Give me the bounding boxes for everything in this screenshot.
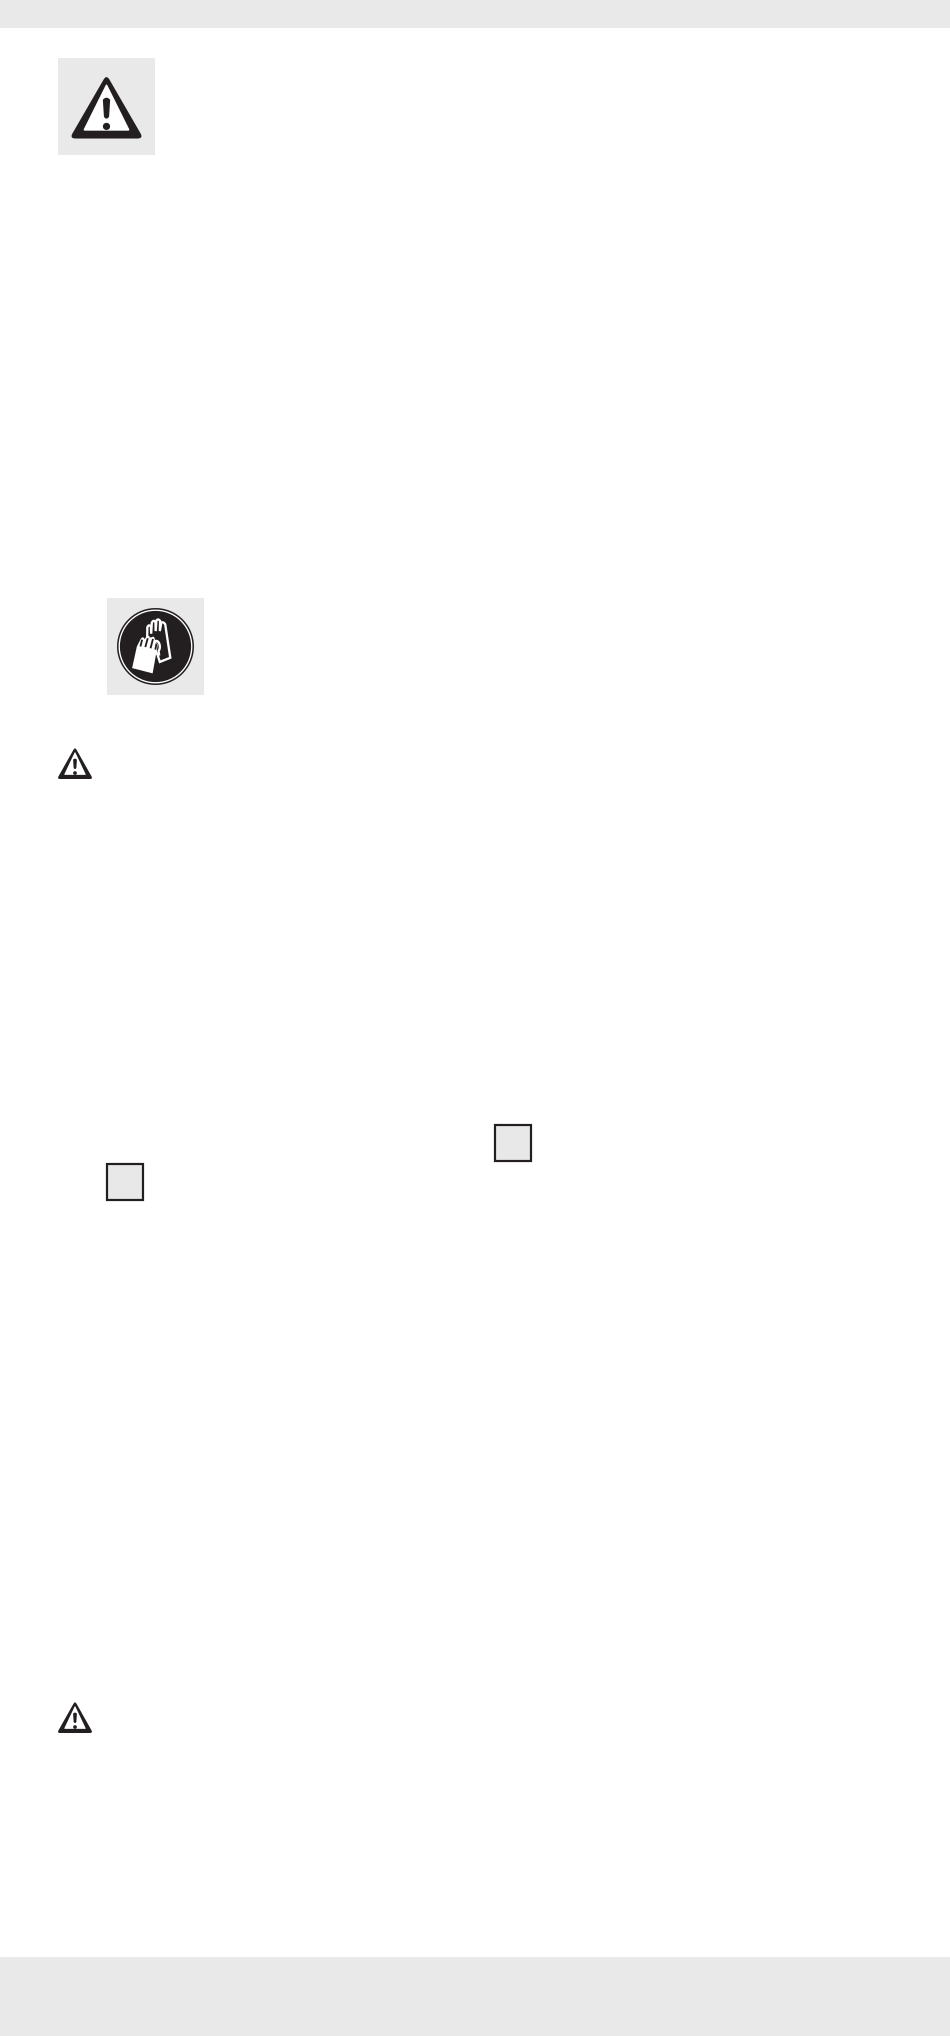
- button[interactable]: Warning — read the safety instructions: [58, 58, 155, 155]
- button[interactable]: Wear protective gloves: [107, 598, 204, 695]
